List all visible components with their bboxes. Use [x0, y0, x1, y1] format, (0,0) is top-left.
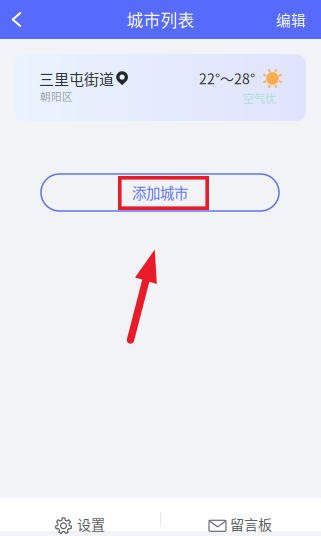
staticText: 朝阳区	[40, 88, 73, 104]
button[interactable]: 设置	[0, 493, 160, 536]
button[interactable]: 留言板	[160, 493, 321, 536]
staticText: 添加城市	[132, 182, 188, 203]
button[interactable]: 返回	[0, 0, 33, 39]
button[interactable]: 编辑	[267, 0, 315, 39]
button[interactable]: 添加城市	[41, 174, 279, 211]
staticText: 设置	[77, 513, 105, 534]
staticText: 留言板	[230, 513, 272, 534]
staticText: 空气优	[243, 90, 276, 106]
staticText: 编辑	[276, 9, 306, 30]
staticText: 22°〜28°	[199, 68, 255, 88]
staticText: 城市列表	[126, 7, 194, 31]
button[interactable]: 三里屯街道	[14, 54, 306, 121]
staticText: 三里屯街道	[39, 67, 114, 89]
